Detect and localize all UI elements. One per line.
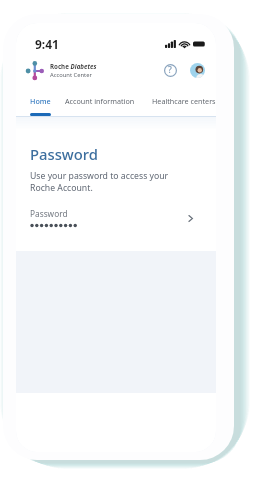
staticText: Account information: [65, 96, 135, 106]
staticText: ?: [168, 64, 172, 76]
button[interactable]: Home: [30, 94, 51, 108]
staticText: Home: [30, 96, 51, 106]
staticText: Password: [30, 208, 68, 219]
button[interactable]: Help: [161, 61, 179, 79]
staticText: Healthcare centers: [152, 96, 216, 106]
button[interactable]: Healthcare centers: [152, 94, 216, 108]
staticText: Diabetes: [69, 62, 97, 70]
staticText: Roche: [50, 62, 69, 70]
staticText: 9:41: [35, 36, 59, 52]
staticText: Password: [30, 144, 98, 164]
staticText: Use your password to access your Roche A…: [30, 170, 169, 194]
button[interactable]: Account information: [65, 94, 135, 108]
button[interactable]: Profile: [190, 63, 205, 78]
staticText: Account Center: [50, 71, 92, 79]
button[interactable]: Password: [30, 205, 202, 231]
